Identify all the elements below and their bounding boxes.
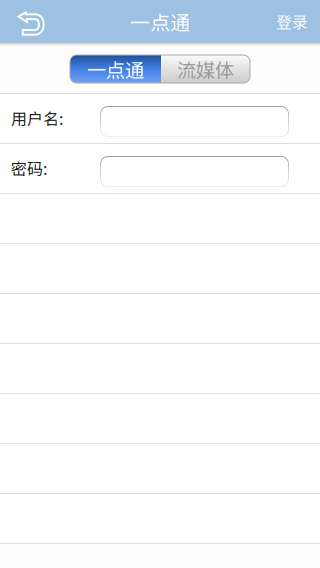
staticText: 一点通 [130,7,190,36]
button[interactable]: 登录 [264,0,320,43]
button[interactable]: 一点通 [70,55,161,83]
staticText: 用户名: [11,106,63,130]
staticText: 一点通 [87,55,144,83]
button[interactable]: Back [0,0,56,43]
staticText: 密码: [11,156,47,180]
staticText: 流媒体 [177,55,234,83]
staticText: 登录 [276,10,308,33]
button[interactable]: 流媒体 [161,55,250,83]
